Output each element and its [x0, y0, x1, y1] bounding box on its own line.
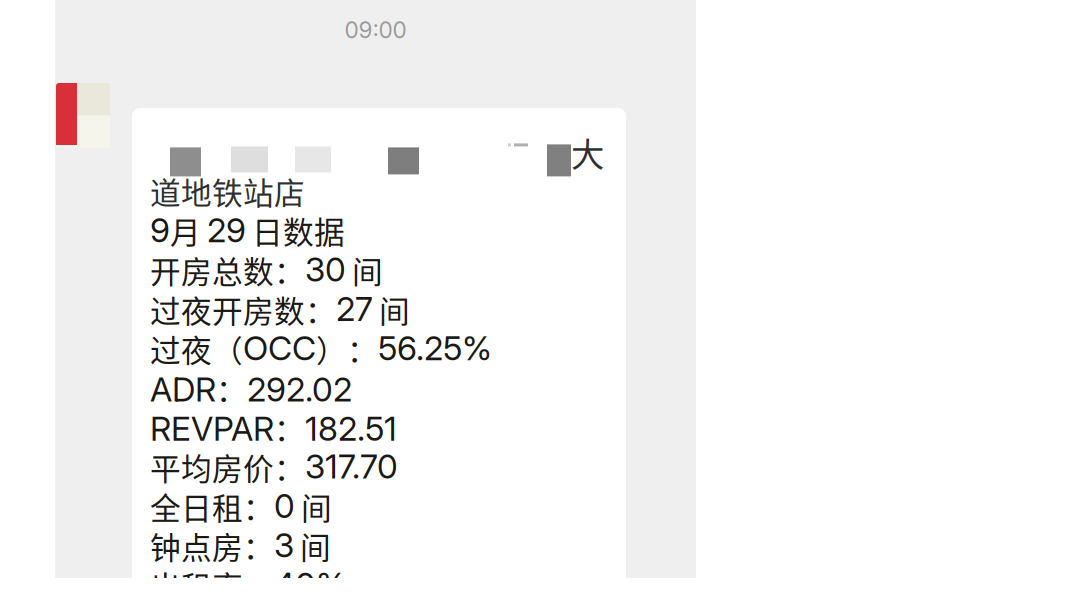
- staticText: 开房总数：30 间: [150, 248, 383, 292]
- staticText: 过夜开房数：27 间: [150, 288, 410, 331]
- staticText: 平均房价：317.70: [150, 445, 398, 489]
- staticText: 09:00: [344, 16, 406, 44]
- staticText: 道地铁站店: [150, 169, 305, 213]
- staticText: ADR：292.02: [150, 366, 352, 410]
- staticText: 全日租：0 间: [150, 485, 332, 528]
- staticText: 钟点房：3 间: [150, 524, 331, 567]
- staticText: 出租率：40%: [150, 563, 346, 600]
- staticText: REVPAR：182.51: [150, 406, 397, 449]
- staticText: 大: [571, 128, 604, 176]
- button[interactable]: Sender profile: [56, 83, 110, 148]
- staticText: 9月 29 日数据: [150, 209, 345, 252]
- staticText: 过夜（OCC）：56.25%: [150, 327, 492, 370]
- button[interactable]: 大: [132, 108, 626, 600]
